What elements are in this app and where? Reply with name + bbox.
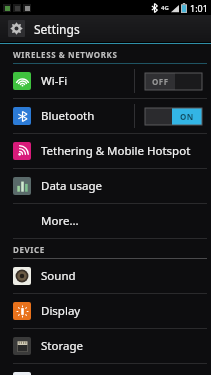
button[interactable]: Data usage — [0, 169, 211, 203]
button[interactable]: Sound — [0, 259, 211, 293]
staticText: 4G — [161, 4, 169, 12]
staticText: More… — [41, 213, 211, 229]
staticText: Sound — [41, 268, 211, 284]
button[interactable]: Bluetooth — [0, 99, 211, 133]
button[interactable]: Toggle off — [145, 73, 202, 90]
staticText: 1:01 — [190, 2, 208, 14]
staticText: Wi-Fi — [41, 73, 134, 89]
staticText: DEVICE — [13, 244, 45, 255]
staticText: OFF — [152, 76, 169, 87]
staticText: ON — [180, 111, 194, 122]
staticText: Display — [41, 303, 211, 319]
button[interactable]: Display — [0, 294, 211, 328]
button[interactable]: Battery — [0, 364, 211, 375]
staticText: Settings — [34, 21, 80, 37]
staticText: Tethering & Mobile Hotspot — [41, 143, 211, 159]
button[interactable]: Wi-Fi — [0, 64, 211, 98]
staticText: Data usage — [41, 178, 211, 194]
button[interactable]: More… — [0, 204, 211, 238]
staticText: Bluetooth — [41, 108, 134, 124]
button[interactable]: Storage — [0, 329, 211, 363]
button[interactable]: Settings — [0, 15, 211, 42]
button[interactable]: Tethering & Mobile Hotspot — [0, 134, 211, 168]
button[interactable]: Toggle on — [145, 108, 202, 125]
staticText: WIRELESS & NETWORKS — [13, 49, 118, 60]
staticText: Storage — [41, 338, 211, 354]
